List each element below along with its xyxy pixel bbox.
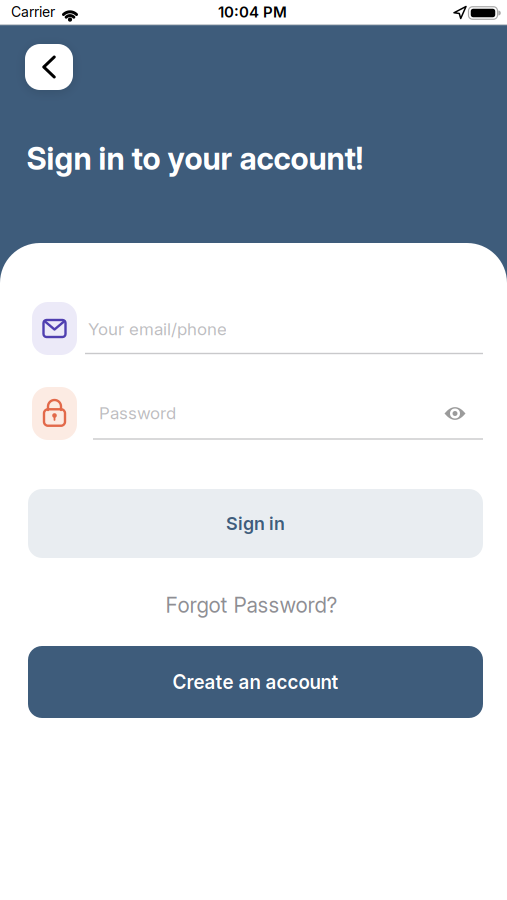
staticText: Forgot Password?: [165, 593, 337, 617]
staticText: Your email/phone: [88, 319, 227, 339]
staticText: Sign in to your account!: [26, 140, 363, 177]
staticText: Password: [99, 403, 176, 423]
button[interactable]: Create an account: [28, 646, 483, 718]
button[interactable]: Sign in: [28, 489, 483, 558]
button[interactable]: Back: [25, 44, 73, 90]
button[interactable]: Your email/phone: [26, 302, 486, 362]
staticText: 10:04 PM: [218, 3, 287, 21]
button[interactable]: Forgot Password?: [165, 593, 337, 617]
button[interactable]: Password: [26, 386, 486, 446]
staticText: Sign in: [226, 513, 285, 534]
button[interactable]: Show password: [441, 401, 469, 425]
staticText: Create an account: [172, 671, 338, 693]
staticText: Carrier: [11, 4, 55, 20]
